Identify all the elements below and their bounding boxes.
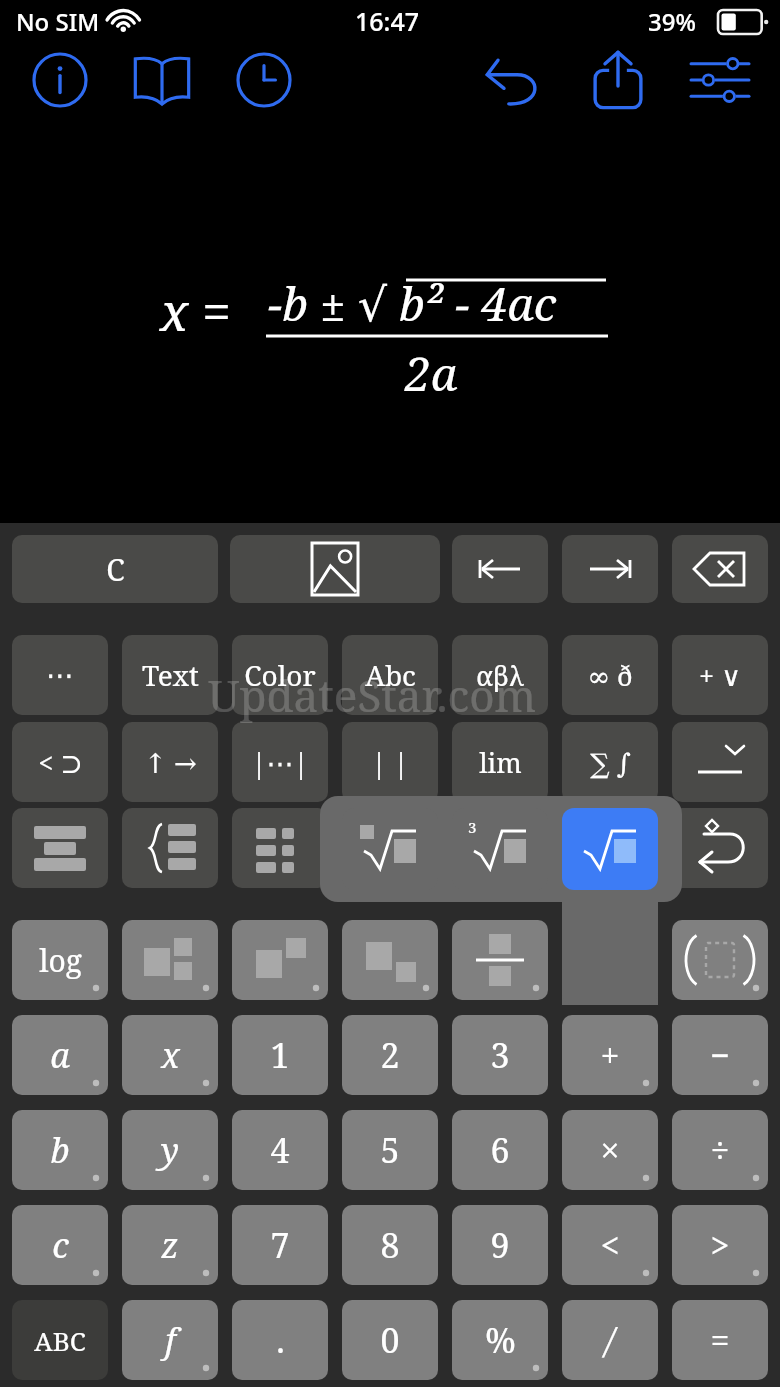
button[interactable]: / bbox=[562, 1300, 658, 1380]
staticText: ⋯ bbox=[46, 659, 74, 692]
staticText: f bbox=[165, 1317, 176, 1363]
staticText: 3 bbox=[468, 817, 477, 837]
button[interactable]: More bbox=[12, 635, 108, 715]
button[interactable]: Root option bbox=[562, 808, 658, 890]
button[interactable]: 1 bbox=[232, 1015, 328, 1095]
staticText: 9 bbox=[490, 1222, 510, 1268]
button[interactable]: |⋯| bbox=[232, 722, 328, 802]
staticText: 16:47 bbox=[355, 4, 420, 38]
button[interactable]: Text bbox=[122, 635, 218, 715]
staticText: × bbox=[600, 1127, 620, 1173]
button[interactable]: ABC bbox=[12, 1300, 108, 1380]
staticText: ∑ ∫ bbox=[590, 744, 631, 781]
button[interactable]: Move right bbox=[562, 535, 658, 603]
staticText: 39% bbox=[648, 5, 696, 38]
button[interactable]: = bbox=[672, 1300, 768, 1380]
button[interactable]: + ∨ bbox=[672, 635, 768, 715]
button[interactable]: z bbox=[122, 1205, 218, 1285]
button[interactable]: 4 bbox=[232, 1110, 328, 1190]
button[interactable]: 0 bbox=[342, 1300, 438, 1380]
button[interactable]: ↑ → bbox=[122, 722, 218, 802]
button[interactable]: Parentheses bbox=[672, 920, 768, 1000]
staticText: 6 bbox=[490, 1127, 510, 1173]
button[interactable]: f bbox=[122, 1300, 218, 1380]
button[interactable]: C bbox=[12, 535, 218, 603]
button[interactable]: Abc bbox=[342, 635, 438, 715]
staticText: 3 bbox=[490, 1032, 510, 1078]
button[interactable]: Move left bbox=[452, 535, 548, 603]
staticText: Abc bbox=[365, 656, 416, 694]
button[interactable]: Library bbox=[124, 46, 200, 114]
button[interactable]: Root option bbox=[342, 808, 438, 890]
button[interactable]: Subscript and superscript bbox=[122, 920, 218, 1000]
button[interactable]: Accent bbox=[672, 722, 768, 802]
button[interactable]: Color bbox=[232, 635, 328, 715]
staticText: / bbox=[605, 1317, 615, 1363]
button[interactable]: Insert image bbox=[230, 535, 440, 603]
button[interactable]: log bbox=[12, 920, 108, 1000]
button[interactable]: y bbox=[122, 1110, 218, 1190]
staticText: > bbox=[710, 1222, 730, 1268]
staticText: a bbox=[50, 1032, 70, 1078]
button[interactable]: Settings bbox=[682, 46, 758, 114]
button[interactable]: ∑ ∫ bbox=[562, 722, 658, 802]
button[interactable]: 3 bbox=[452, 1015, 548, 1095]
button[interactable]: . bbox=[232, 1300, 328, 1380]
staticText: 8 bbox=[380, 1222, 400, 1268]
staticText: Color bbox=[244, 656, 316, 694]
button[interactable]: Info bbox=[22, 46, 98, 114]
button[interactable]: % bbox=[452, 1300, 548, 1380]
staticText: 1 bbox=[270, 1032, 290, 1078]
button[interactable]: × bbox=[562, 1110, 658, 1190]
staticText: lim bbox=[479, 744, 522, 781]
button[interactable] bbox=[562, 808, 658, 888]
button[interactable]: Undo bbox=[478, 46, 554, 114]
button[interactable]: ÷ bbox=[672, 1110, 768, 1190]
button[interactable]: 7 bbox=[232, 1205, 328, 1285]
button[interactable]: History bbox=[226, 46, 302, 114]
button[interactable]: < bbox=[562, 1205, 658, 1285]
staticText: % bbox=[485, 1317, 516, 1363]
button[interactable]: Fraction bbox=[452, 920, 548, 1000]
button[interactable]: − bbox=[672, 1015, 768, 1095]
button[interactable]: Share bbox=[580, 46, 656, 114]
button[interactable]: Root option bbox=[452, 808, 548, 890]
button[interactable]: αβλ bbox=[452, 635, 548, 715]
button[interactable]: ∞ ð bbox=[562, 635, 658, 715]
button[interactable]: + bbox=[562, 1015, 658, 1095]
staticText: . bbox=[276, 1317, 285, 1363]
button[interactable]: 5 bbox=[342, 1110, 438, 1190]
staticText: UpdateStar.com bbox=[208, 665, 537, 725]
button[interactable]: < ⊃ bbox=[12, 722, 108, 802]
button[interactable]: Matrix bbox=[232, 808, 328, 888]
staticText: z bbox=[161, 1222, 179, 1268]
staticText: = bbox=[710, 1317, 730, 1363]
button[interactable]: b bbox=[12, 1110, 108, 1190]
staticText: 7 bbox=[270, 1222, 290, 1268]
staticText: b bbox=[50, 1127, 70, 1173]
button[interactable]: Superscript bbox=[232, 920, 328, 1000]
button[interactable]: 6 bbox=[452, 1110, 548, 1190]
button[interactable]: 9 bbox=[452, 1205, 548, 1285]
staticText: 0 bbox=[380, 1317, 400, 1363]
button[interactable]: Align bbox=[12, 808, 108, 888]
button[interactable]: New line bbox=[672, 808, 768, 888]
button[interactable] bbox=[452, 808, 548, 888]
button[interactable]: 2 bbox=[342, 1015, 438, 1095]
button[interactable]: | | bbox=[342, 722, 438, 802]
button[interactable]: lim bbox=[452, 722, 548, 802]
button[interactable]: Delete bbox=[672, 535, 768, 603]
staticText: ABC bbox=[34, 1323, 86, 1358]
staticText: αβλ bbox=[476, 657, 524, 694]
button[interactable]: Cases bbox=[122, 808, 218, 888]
button[interactable]: 8 bbox=[342, 1205, 438, 1285]
button[interactable]: > bbox=[672, 1205, 768, 1285]
staticText: ÷ bbox=[710, 1127, 730, 1173]
button[interactable]: a bbox=[12, 1015, 108, 1095]
button[interactable] bbox=[342, 808, 438, 888]
button[interactable]: c bbox=[12, 1205, 108, 1285]
staticText: + bbox=[600, 1032, 620, 1078]
button[interactable]: Subscript bbox=[342, 920, 438, 1000]
button[interactable]: x bbox=[122, 1015, 218, 1095]
